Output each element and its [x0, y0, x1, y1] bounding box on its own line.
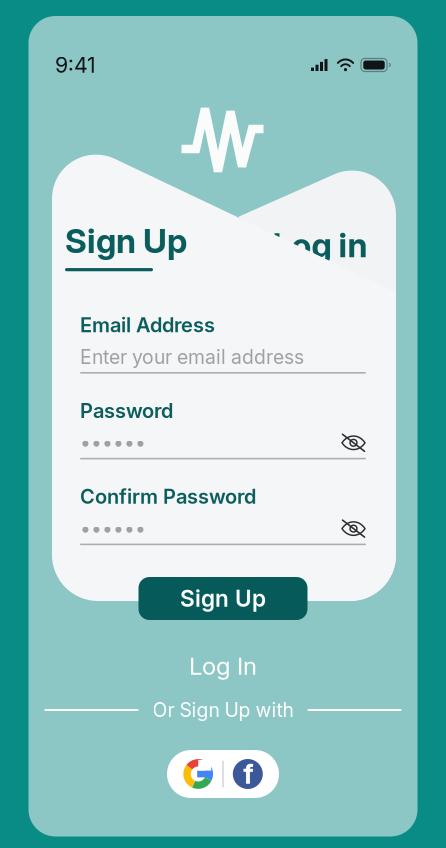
button[interactable]: Log In — [189, 651, 257, 680]
staticText: Log In — [189, 651, 257, 680]
button[interactable]: Sign up with Google — [174, 750, 222, 798]
button[interactable]: Sign Up — [138, 577, 307, 620]
staticText: 9:41 — [55, 52, 96, 78]
staticText: f — [243, 758, 253, 790]
staticText: Sign Up — [65, 221, 187, 261]
button[interactable]: Show password — [341, 519, 366, 539]
staticText: Or Sign Up with — [152, 698, 293, 722]
staticText: Confirm Password — [80, 484, 256, 509]
staticText: Enter your email address — [80, 345, 304, 369]
staticText: •••••• — [80, 517, 146, 540]
staticText: Log in — [272, 225, 367, 265]
staticText: Password — [80, 399, 173, 423]
staticText: •••••• — [80, 431, 146, 454]
staticText: Email Address — [80, 313, 215, 337]
staticText: Sign Up — [180, 585, 266, 612]
button[interactable]: Show password — [341, 433, 366, 453]
button[interactable]: Sign up with Facebook — [224, 750, 272, 798]
